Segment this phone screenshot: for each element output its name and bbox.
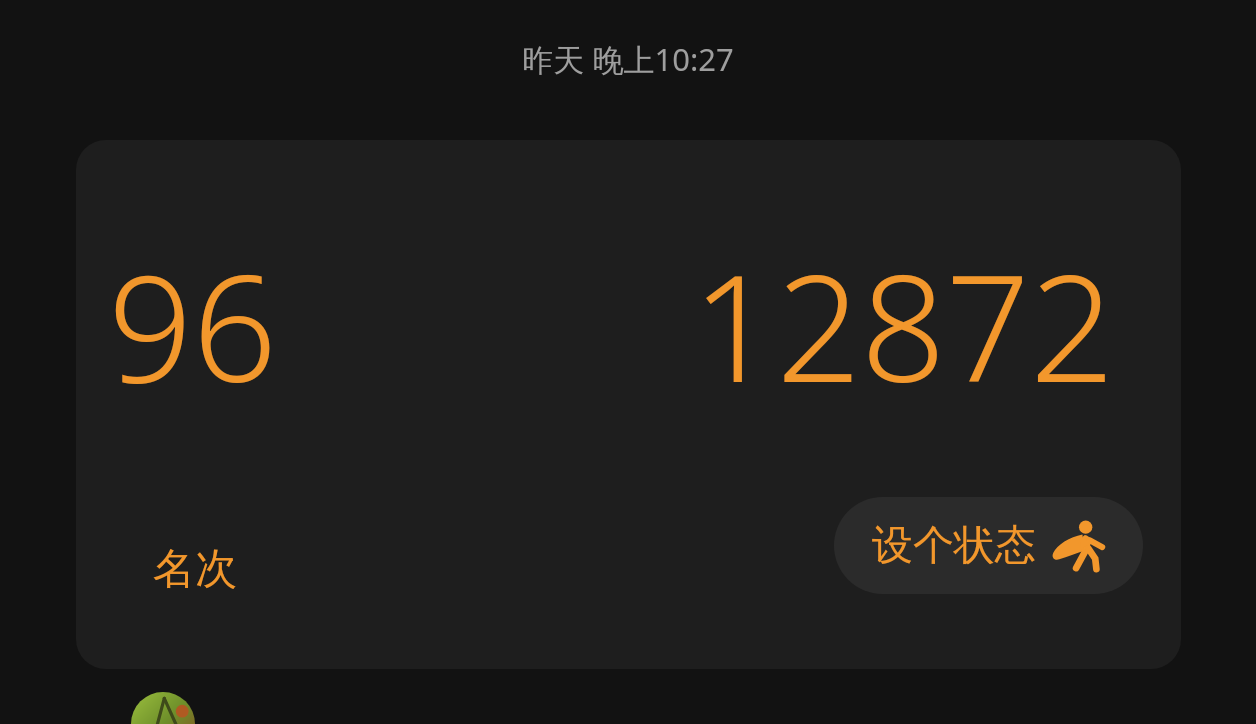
staticText: 名次 <box>153 543 237 596</box>
button[interactable]: 设个状态 <box>834 497 1143 594</box>
staticText: 昨天 晚上10:27 <box>0 38 1256 80</box>
staticText: 设个状态 <box>872 520 1036 572</box>
button[interactable]: Profile avatar <box>131 692 195 724</box>
staticText: 步数 <box>1021 543 1105 596</box>
staticText: 96 <box>108 224 278 426</box>
button[interactable]: 96 <box>76 140 1181 669</box>
other: Set a status <box>1050 517 1108 575</box>
staticText: 12872 <box>692 224 1115 426</box>
